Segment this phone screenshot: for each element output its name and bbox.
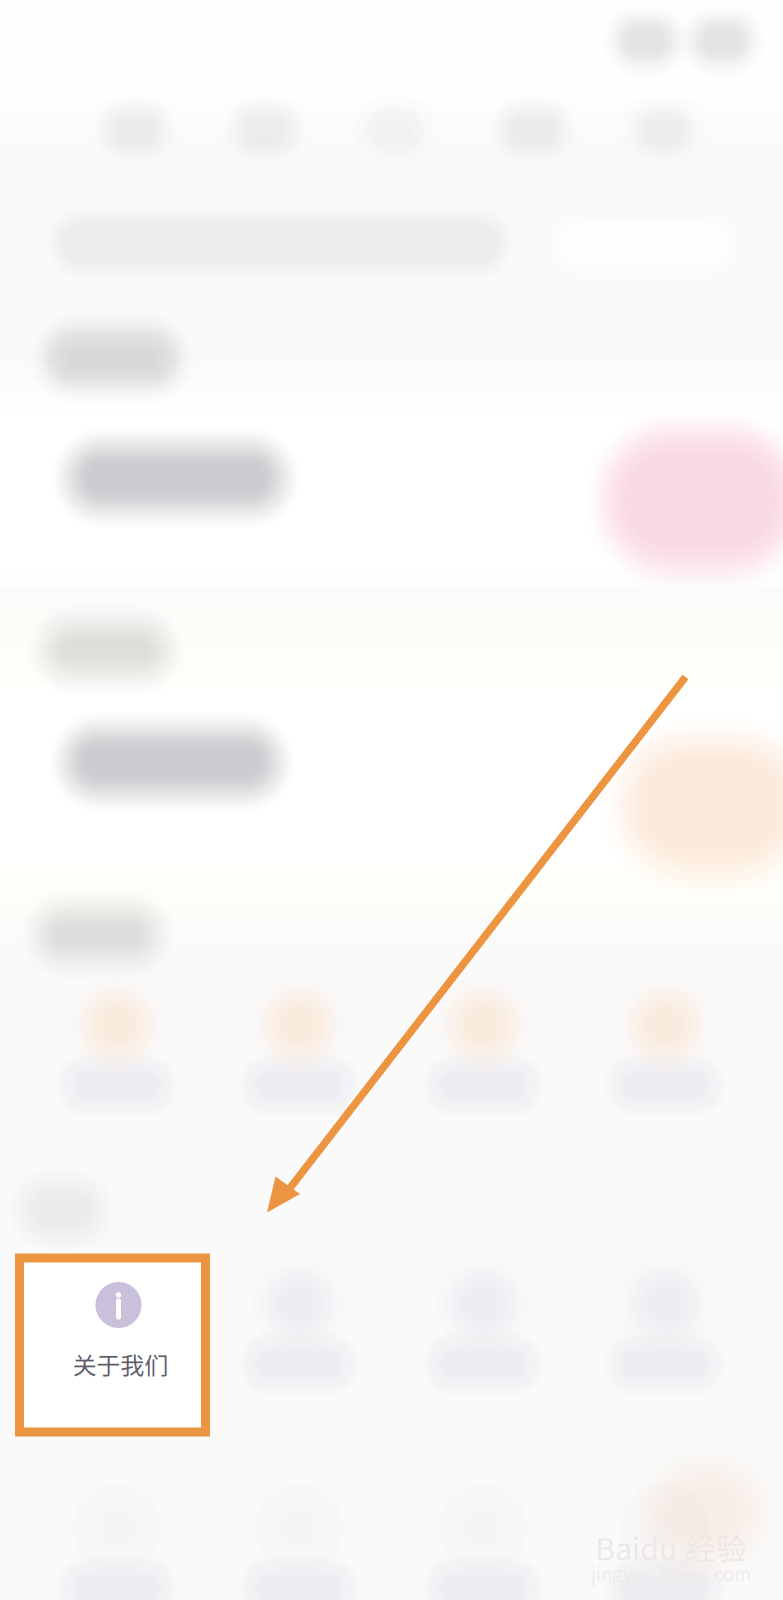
staticText: jingyan.baidu.com (591, 1559, 751, 1586)
staticText: Baidu 经验 (595, 1525, 747, 1569)
staticText: 关于我们 (72, 1347, 168, 1381)
button[interactable]: 关于我们 (19, 1258, 205, 1432)
